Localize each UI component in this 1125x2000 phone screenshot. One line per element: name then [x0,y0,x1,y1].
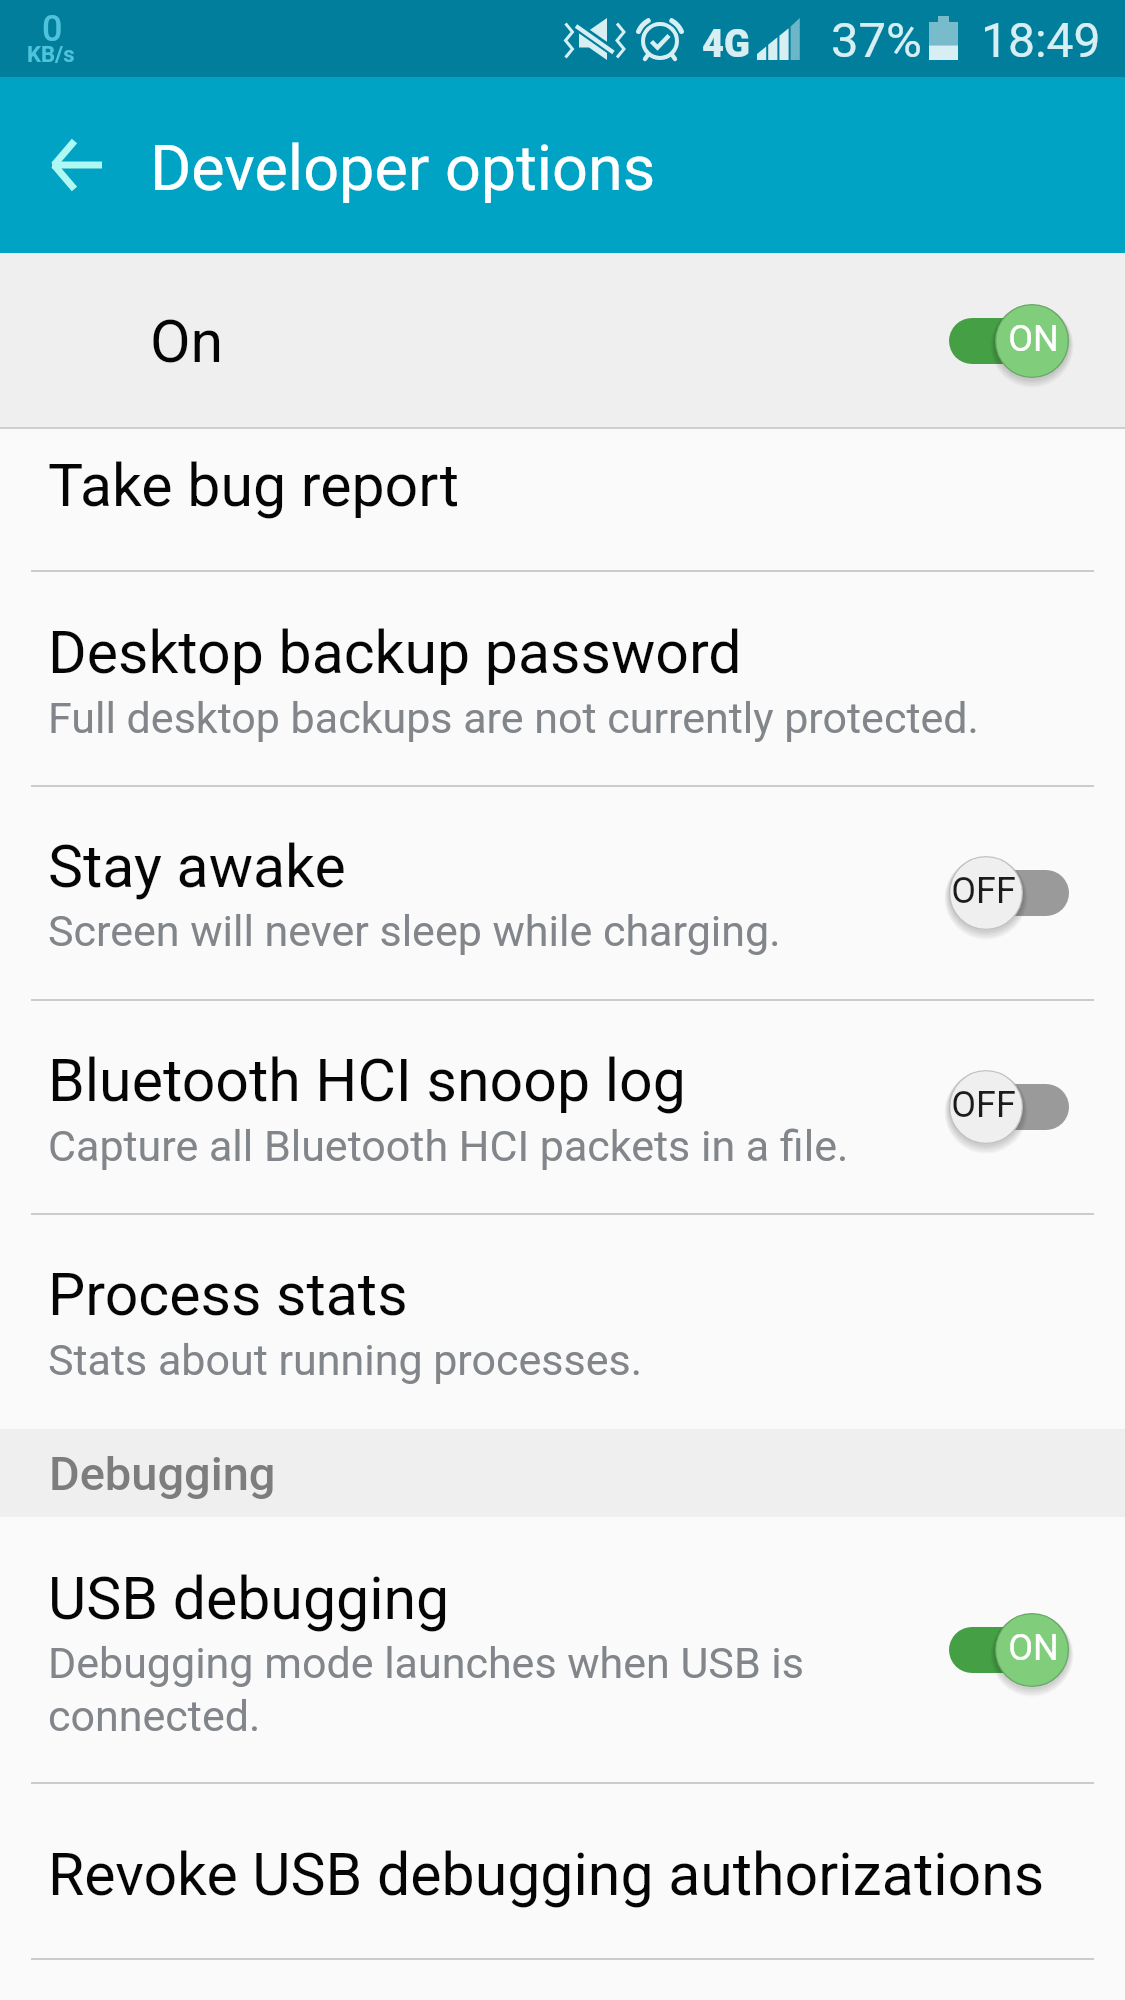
button[interactable]: Navigate up [22,111,130,219]
button[interactable]: Toggle off [949,1062,1069,1152]
button[interactable]: USB debugging [0,1517,1125,1782]
button[interactable]: Toggle off [949,848,1069,938]
staticText: Desktop backup password [48,618,742,687]
staticText: Screen will never sleep while charging. [48,906,781,956]
button[interactable]: Revoke USB debugging authorizations [0,1784,1125,1958]
button[interactable]: Toggle on [949,1605,1069,1695]
staticText: Developer options [150,132,656,206]
button[interactable]: Toggle on [949,296,1069,386]
staticText: Capture all Bluetooth HCI packets in a f… [48,1121,849,1171]
button[interactable]: Process stats [0,1215,1125,1429]
staticText: 37% [831,12,922,69]
staticText: ON [1008,1627,1059,1669]
staticText: On [150,307,224,376]
staticText: Bluetooth HCI snoop log [48,1046,686,1115]
staticText: Stay awake [48,832,346,901]
staticText: USB debugging [48,1564,450,1633]
staticText: OFF [951,1084,1016,1126]
staticText: Full desktop backups are not currently p… [48,693,979,743]
button[interactable]: Bluetooth HCI snoop log [0,1001,1125,1213]
button[interactable]: Desktop backup password [0,572,1125,785]
staticText: ON [1008,318,1059,360]
staticText: OFF [951,870,1016,912]
staticText: Revoke USB debugging authorizations [48,1840,1045,1909]
button[interactable]: Take bug report [0,429,1125,570]
staticText: KB/s [27,42,75,68]
button[interactable]: Stay awake [0,787,1125,999]
staticText: Process stats [48,1260,408,1329]
staticText: Take bug report [48,451,459,520]
staticText: 0 [42,8,63,50]
staticText: Debugging mode launches when USB is conn… [48,1638,805,1741]
staticText: 18:49 [981,12,1101,68]
staticText: Stats about running processes. [48,1335,643,1385]
staticText: 4G [702,22,750,67]
button[interactable]: On [0,253,1125,429]
staticText: Debugging [49,1446,276,1501]
